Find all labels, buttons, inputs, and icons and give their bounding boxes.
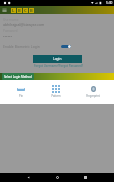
staticText: Fingerprint bbox=[86, 94, 100, 98]
staticText: Enable Biometric Login bbox=[3, 44, 40, 49]
staticText: B bbox=[30, 8, 33, 13]
button[interactable]: Recents bbox=[83, 175, 88, 180]
staticText: Login bbox=[53, 57, 62, 61]
button[interactable]: Pattern bbox=[45, 85, 67, 103]
button[interactable]: Forgot Password? bbox=[59, 64, 84, 68]
button[interactable]: Login bbox=[33, 55, 82, 63]
button[interactable]: Menu bbox=[2, 7, 7, 13]
staticText: •••••• bbox=[3, 34, 13, 39]
button[interactable] bbox=[61, 45, 71, 48]
button[interactable]: Fingerprint bbox=[82, 85, 104, 103]
button[interactable]: Pin bbox=[10, 85, 32, 103]
button[interactable]: Forgot Username? bbox=[34, 64, 60, 68]
staticText: 5:30 bbox=[106, 1, 113, 5]
button[interactable]: Back bbox=[26, 175, 31, 180]
staticText: B bbox=[18, 8, 21, 13]
staticText: Pin bbox=[19, 94, 23, 98]
staticText: Password bbox=[3, 29, 18, 33]
staticText: L bbox=[12, 8, 15, 13]
staticText: abhilrajpal@bizwyse.com bbox=[3, 22, 45, 27]
staticText: Username bbox=[3, 18, 19, 22]
button[interactable]: Home bbox=[55, 175, 60, 180]
button[interactable]: Select Login Method bbox=[2, 73, 34, 80]
staticText: Select Login Method bbox=[4, 75, 32, 79]
staticText: C bbox=[24, 8, 27, 13]
staticText: Pattern bbox=[51, 94, 61, 98]
